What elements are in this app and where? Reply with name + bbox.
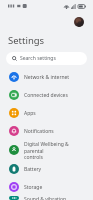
staticText: Sound & vibration (24, 196, 67, 200)
staticText: Notifications (24, 128, 54, 135)
button[interactable]: Network & internet (0, 68, 93, 86)
staticText: Battery (24, 166, 42, 173)
button[interactable]: Battery (0, 160, 93, 178)
button[interactable]: Account (74, 17, 84, 27)
button[interactable]: Connected devices (0, 86, 93, 104)
staticText: Apps (24, 110, 36, 117)
button[interactable]: Sound & vibration (0, 196, 93, 200)
button[interactable]: Apps (0, 104, 93, 122)
staticText: Digital Wellbeing & parental controls (24, 141, 87, 160)
staticText: Connected devices (24, 92, 68, 99)
staticText: Network & internet (24, 74, 70, 81)
button[interactable]: Digital Wellbeing & parental controls (0, 140, 93, 160)
button[interactable]: Search settings (6, 52, 87, 65)
staticText: Search settings (20, 55, 56, 62)
button[interactable]: Notifications (0, 122, 93, 140)
staticText: Storage (24, 184, 43, 191)
staticText: Settings (8, 34, 45, 47)
button[interactable]: Storage (0, 178, 93, 196)
